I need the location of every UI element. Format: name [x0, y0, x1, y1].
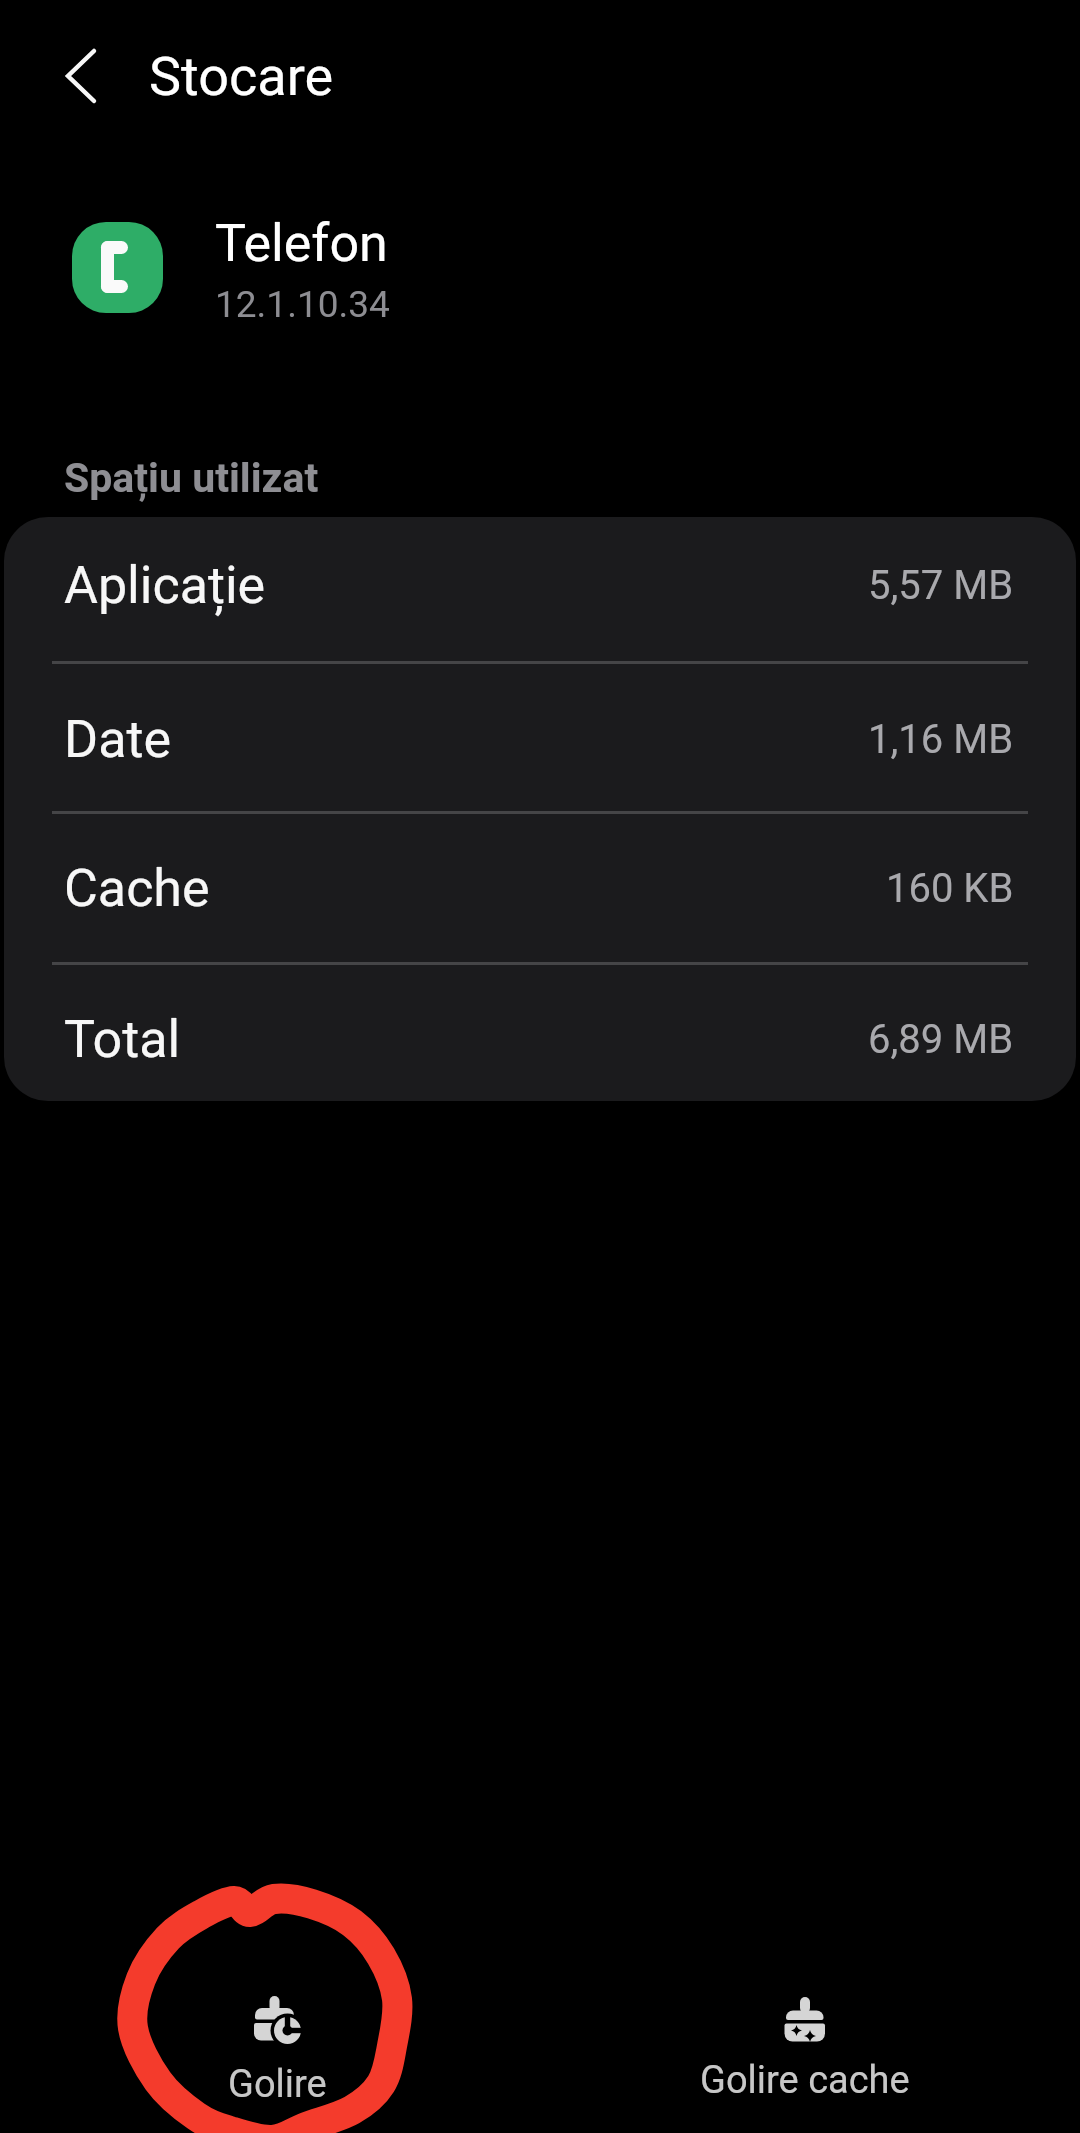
staticText: Total	[64, 1009, 181, 1070]
staticText: Golire	[228, 2062, 327, 2107]
button[interactable]: Golire	[147, 1996, 407, 2107]
staticText: 160 KB	[886, 865, 1014, 912]
staticText: Aplicație	[64, 555, 266, 616]
staticText: 5,57 MB	[868, 562, 1014, 609]
staticText: 12.1.10.34	[215, 283, 390, 326]
staticText: Golire cache	[700, 2058, 910, 2103]
button[interactable]: Golire cache	[655, 1996, 955, 2103]
staticText: Telefon	[215, 213, 388, 274]
staticText: Date	[64, 709, 171, 770]
staticText: 6,89 MB	[868, 1016, 1014, 1063]
staticText: 1,16 MB	[868, 716, 1014, 763]
staticText: Stocare	[149, 45, 334, 108]
staticText: Spațiu utilizat	[64, 454, 319, 502]
staticText: Cache	[64, 858, 210, 919]
button[interactable]	[58, 42, 102, 106]
